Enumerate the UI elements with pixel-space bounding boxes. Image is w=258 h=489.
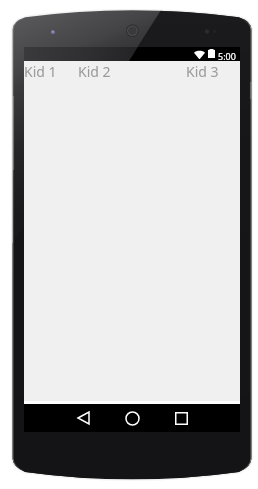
button[interactable]: Recents	[168, 405, 194, 431]
staticText: Kid 3	[186, 62, 219, 81]
button[interactable]: Kid 1	[24, 62, 57, 81]
button[interactable]: Kid 3	[186, 62, 219, 81]
button[interactable]: Home	[119, 405, 145, 431]
button[interactable]: Kid 2	[78, 62, 111, 81]
button[interactable]: Back	[70, 405, 96, 431]
staticText: Kid 1	[24, 62, 57, 81]
staticText: 5:00	[218, 50, 236, 62]
staticText: Kid 2	[78, 62, 111, 81]
